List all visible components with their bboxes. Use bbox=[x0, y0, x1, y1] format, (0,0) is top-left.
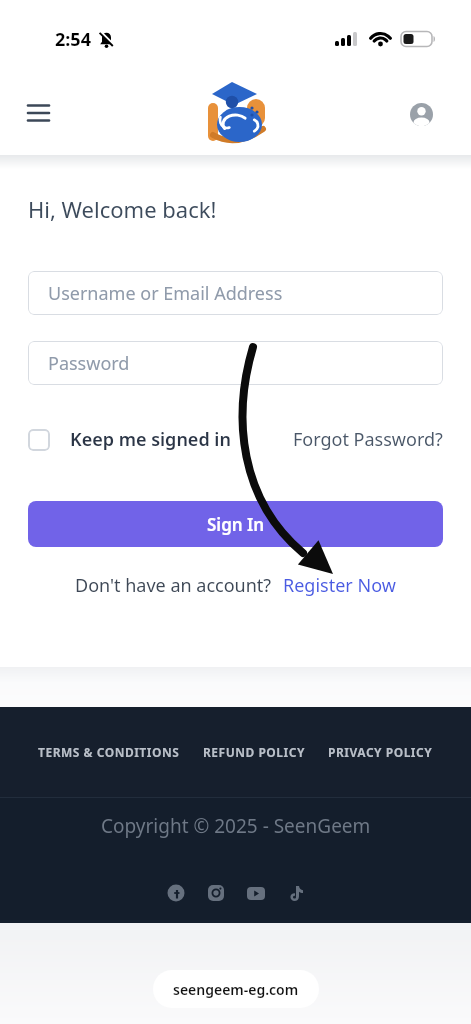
button[interactable] bbox=[408, 101, 434, 127]
button[interactable]: Sign In bbox=[28, 501, 443, 547]
button[interactable]: Forgot Password? bbox=[293, 427, 443, 452]
button[interactable] bbox=[246, 883, 266, 903]
button[interactable]: PRIVACY POLICY bbox=[328, 744, 433, 760]
button[interactable] bbox=[206, 883, 226, 903]
button[interactable] bbox=[286, 883, 306, 903]
button[interactable] bbox=[28, 429, 50, 451]
staticText: Don't have an account? bbox=[75, 573, 272, 598]
button[interactable]: TERMS & CONDITIONS bbox=[38, 744, 180, 760]
staticText: Username or Email Address bbox=[48, 281, 283, 306]
button[interactable]: Username or Email Address bbox=[28, 271, 443, 315]
staticText: Password bbox=[48, 351, 130, 376]
staticText: Sign In bbox=[207, 513, 265, 536]
button[interactable]: Password bbox=[28, 341, 443, 385]
button[interactable]: seengeem-eg.com bbox=[153, 970, 319, 1008]
button[interactable] bbox=[22, 96, 56, 130]
button[interactable] bbox=[206, 82, 266, 146]
button[interactable] bbox=[166, 883, 186, 903]
staticText: Copyright © 2025 - SeenGeem bbox=[101, 813, 371, 839]
staticText: Hi, Welcome back! bbox=[28, 194, 217, 224]
staticText: seengeem-eg.com bbox=[173, 980, 299, 999]
staticText: Keep me signed in bbox=[70, 427, 231, 452]
staticText: 2:54 bbox=[55, 27, 91, 52]
button[interactable]: REFUND POLICY bbox=[203, 744, 305, 760]
button[interactable]: Register Now bbox=[283, 573, 396, 598]
